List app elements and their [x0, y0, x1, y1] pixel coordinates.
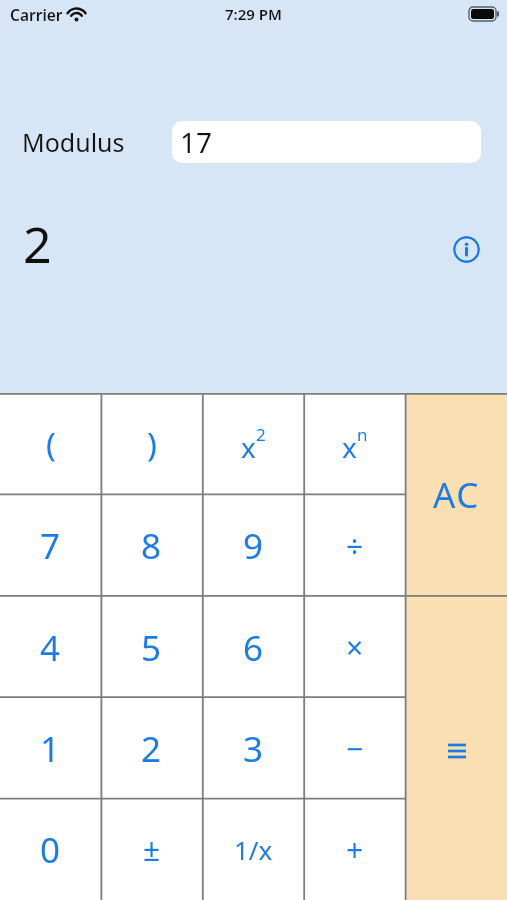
button[interactable] — [406, 596, 507, 900]
staticText: 7:29 PM — [225, 4, 282, 24]
staticText: Carrier — [10, 4, 63, 25]
button[interactable]: x — [304, 393, 406, 495]
button[interactable]: ( — [0, 393, 101, 495]
staticText: 2 — [141, 725, 162, 773]
staticText: + — [346, 829, 364, 870]
button[interactable]: AC — [406, 393, 507, 596]
staticText: 9 — [243, 522, 264, 570]
button[interactable]: 4 — [0, 597, 101, 698]
staticText: 8 — [141, 522, 162, 570]
staticText: ( — [46, 422, 56, 467]
button[interactable]: ± — [101, 799, 202, 900]
staticText: AC — [433, 471, 480, 519]
staticText: Modulus — [22, 125, 125, 159]
staticText: ± — [143, 829, 161, 870]
button[interactable]: 1/x — [202, 799, 304, 900]
staticText: 1/x — [234, 832, 273, 867]
button[interactable]: 2 — [101, 698, 202, 799]
button[interactable]: 7 — [0, 495, 101, 597]
staticText: 1 — [40, 725, 61, 773]
button[interactable]: 0 — [0, 799, 101, 900]
button[interactable]: 8 — [101, 495, 202, 597]
button[interactable]: × — [304, 597, 406, 698]
button[interactable] — [453, 236, 480, 263]
staticText: x — [241, 428, 256, 466]
button[interactable]: 5 — [101, 597, 202, 698]
button[interactable]: 17 — [172, 121, 481, 163]
staticText: 6 — [243, 624, 264, 672]
button[interactable]: 6 — [202, 597, 304, 698]
staticText: 7 — [40, 522, 61, 570]
button[interactable]: − — [304, 698, 406, 799]
staticText: 2 — [23, 210, 52, 276]
staticText: − — [346, 728, 364, 769]
staticText: 17 — [180, 123, 213, 161]
staticText: × — [346, 627, 364, 668]
button[interactable]: x — [202, 393, 304, 495]
staticText: ) — [147, 422, 157, 467]
button[interactable]: ) — [101, 393, 202, 495]
staticText: n — [357, 423, 368, 446]
button[interactable]: ÷ — [304, 495, 406, 597]
staticText: 4 — [40, 624, 61, 672]
button[interactable]: 3 — [202, 698, 304, 799]
staticText: 2 — [256, 423, 266, 446]
button[interactable]: 1 — [0, 698, 101, 799]
staticText: x — [342, 428, 357, 466]
staticText: 0 — [40, 826, 61, 874]
staticText: 3 — [243, 725, 264, 773]
staticText: ÷ — [346, 526, 364, 567]
button[interactable]: + — [304, 799, 406, 900]
staticText: 5 — [141, 624, 162, 672]
button[interactable]: 9 — [202, 495, 304, 597]
